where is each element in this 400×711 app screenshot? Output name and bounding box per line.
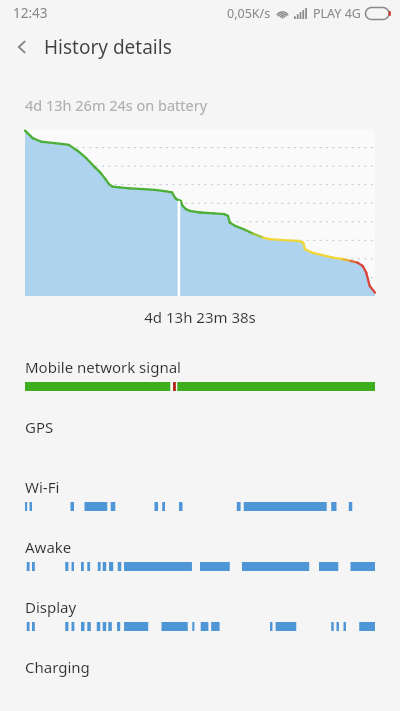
- button[interactable]: Awake: [0, 537, 400, 597]
- staticText: 4d 13h 26m 24s on battery: [25, 95, 208, 115]
- button[interactable]: Back: [0, 26, 44, 68]
- staticText: Charging: [25, 657, 90, 677]
- button[interactable]: Wi-Fi: [0, 477, 400, 537]
- staticText: Wi-Fi: [25, 477, 60, 497]
- button[interactable]: Charging: [0, 657, 400, 711]
- staticText: 0,05K/s: [227, 5, 271, 22]
- staticText: 12:43: [13, 4, 48, 22]
- staticText: History details: [44, 34, 172, 60]
- staticText: 4d 13h 23m 38s: [0, 307, 400, 327]
- staticText: PLAY 4G: [313, 5, 361, 22]
- staticText: Awake: [25, 537, 72, 557]
- staticText: Display: [25, 597, 77, 617]
- staticText: GPS: [25, 417, 54, 437]
- button[interactable]: Display: [0, 597, 400, 657]
- button[interactable]: Mobile network signal: [0, 357, 400, 417]
- button[interactable]: GPS: [0, 417, 400, 477]
- staticText: Mobile network signal: [25, 357, 181, 377]
